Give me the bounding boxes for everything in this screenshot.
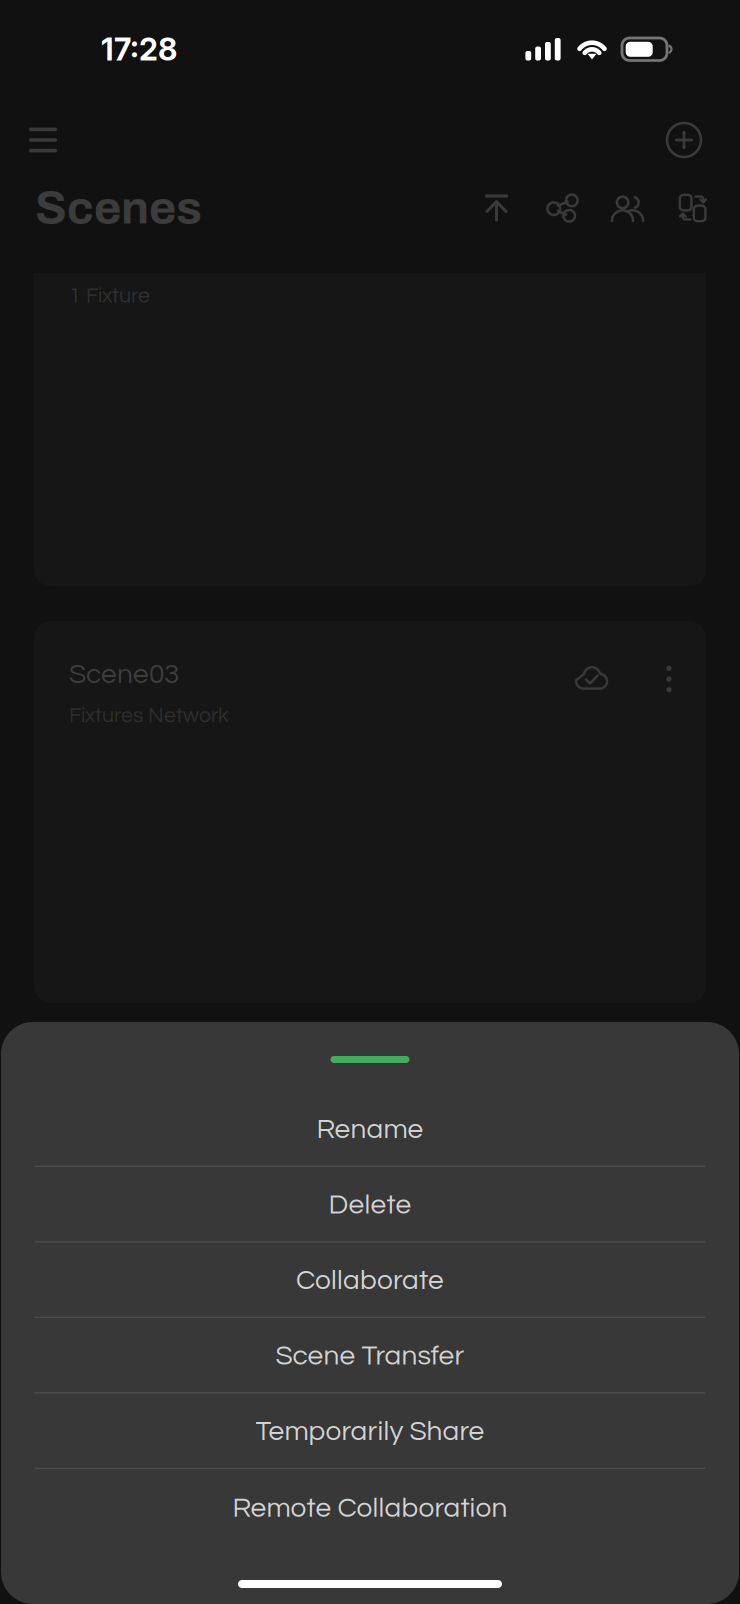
button[interactable]: Remote Collaboration: [1, 1470, 739, 1546]
button[interactable]: More options: [654, 660, 684, 698]
button[interactable]: Share: [546, 193, 578, 222]
button[interactable]: Import: [481, 194, 512, 222]
button[interactable]: Scene Transfer: [1, 1319, 739, 1395]
button[interactable]: Scene transfer: [677, 193, 709, 222]
staticText: 17:28: [101, 31, 177, 68]
staticText: Fixtures Network: [69, 705, 229, 727]
staticText: Rename: [316, 1115, 423, 1144]
button[interactable]: Temporarily Share: [1, 1395, 739, 1470]
button[interactable]: Collaborate: [1, 1244, 739, 1319]
staticText: Remote Collaboration: [232, 1494, 507, 1523]
button[interactable]: Menu: [20, 117, 66, 163]
staticText: Scenes: [35, 183, 202, 233]
button[interactable]: Synced: [575, 664, 609, 691]
staticText: Delete: [328, 1190, 411, 1219]
staticText: Collaborate: [296, 1266, 444, 1295]
staticText: 1 Fixture: [69, 285, 150, 307]
button[interactable]: Add scene: [661, 117, 707, 163]
staticText: Scene03: [69, 660, 179, 689]
staticText: Scene Transfer: [275, 1341, 464, 1370]
staticText: Temporarily Share: [255, 1417, 484, 1446]
button[interactable]: Collaborators: [611, 193, 643, 222]
button[interactable]: Rename: [1, 1093, 739, 1168]
button[interactable]: Delete: [1, 1168, 739, 1244]
